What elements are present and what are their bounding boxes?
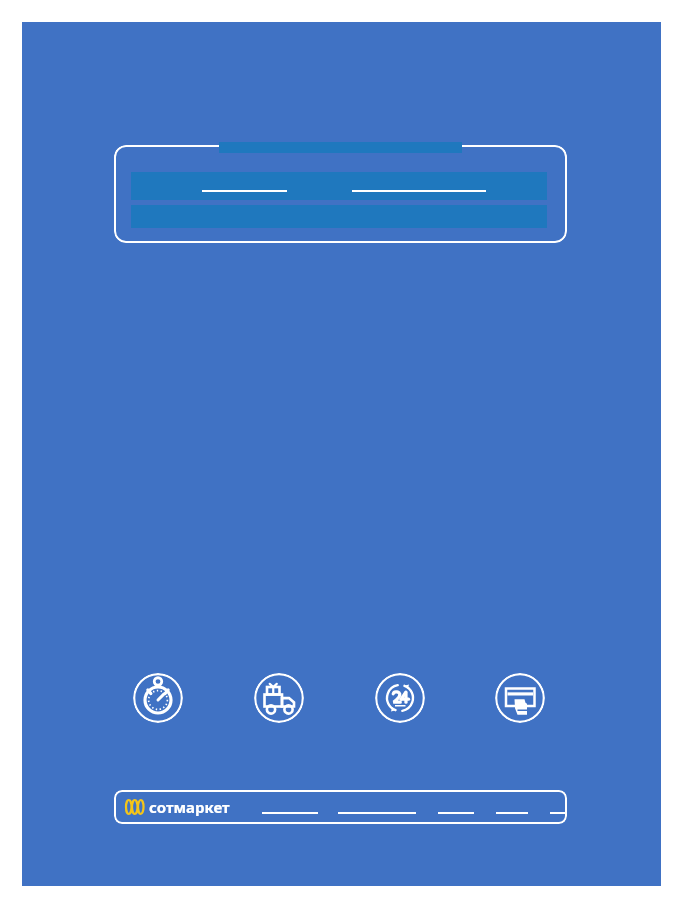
button[interactable]: Footer link (438, 800, 474, 814)
button[interactable]: Footer link (262, 800, 318, 814)
button[interactable]: 24 hour service (375, 673, 425, 723)
button[interactable]: Delivery (254, 673, 304, 723)
staticText: сотмаркет (149, 797, 230, 817)
button[interactable]: Fast order processing (133, 673, 183, 723)
button[interactable]: Footer link (550, 800, 567, 814)
button[interactable] (114, 145, 567, 243)
button[interactable]: sotmarket home (124, 795, 232, 819)
button[interactable]: Card payment (495, 673, 545, 723)
button[interactable]: Footer link (496, 800, 528, 814)
button[interactable]: Footer link (338, 800, 416, 814)
